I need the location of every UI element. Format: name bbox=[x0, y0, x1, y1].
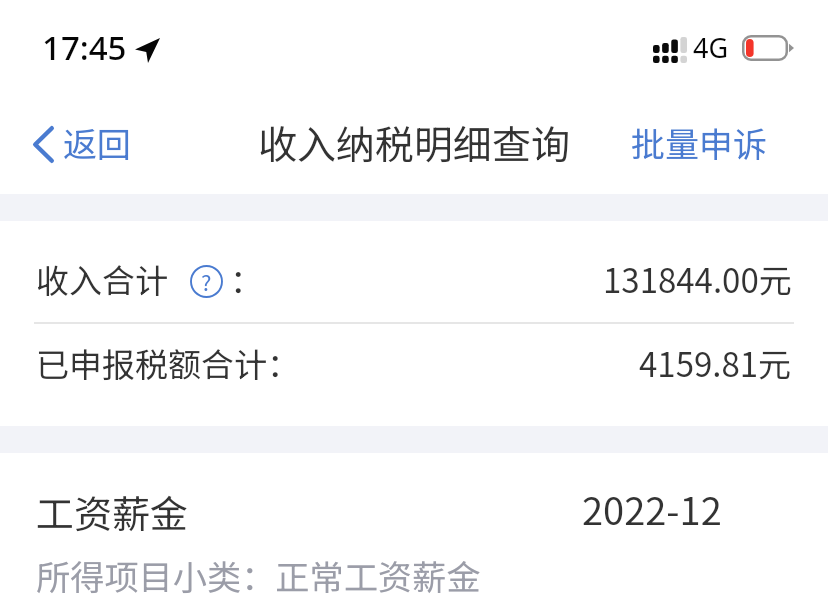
staticText: 所得项目小类：正常工资薪金 bbox=[36, 550, 481, 600]
staticText: 工资薪金 bbox=[36, 484, 189, 539]
staticText: ： bbox=[230, 255, 263, 303]
staticText: 2022-12 bbox=[582, 481, 722, 536]
staticText: 131844.00元 bbox=[603, 255, 792, 303]
button[interactable]: 批量申诉 bbox=[607, 106, 828, 183]
staticText: 收入合计 bbox=[36, 255, 168, 303]
button[interactable]: 返回 bbox=[0, 106, 155, 183]
staticText: 返回 bbox=[63, 118, 131, 167]
button[interactable]: 收入合计 bbox=[0, 240, 828, 322]
staticText: ? bbox=[201, 265, 212, 297]
button[interactable]: 说明 bbox=[190, 265, 223, 298]
staticText: 批量申诉 bbox=[631, 118, 767, 167]
button[interactable]: 工资薪金 bbox=[0, 453, 828, 600]
staticText: 4159.81元 bbox=[639, 339, 792, 387]
staticText: 4G bbox=[693, 29, 729, 66]
button[interactable]: 已申报税额合计： bbox=[0, 324, 828, 406]
staticText: 已申报税额合计： bbox=[36, 339, 300, 387]
staticText: 收入纳税明细查询 bbox=[258, 114, 571, 170]
staticText: 17:45 bbox=[42, 25, 127, 70]
